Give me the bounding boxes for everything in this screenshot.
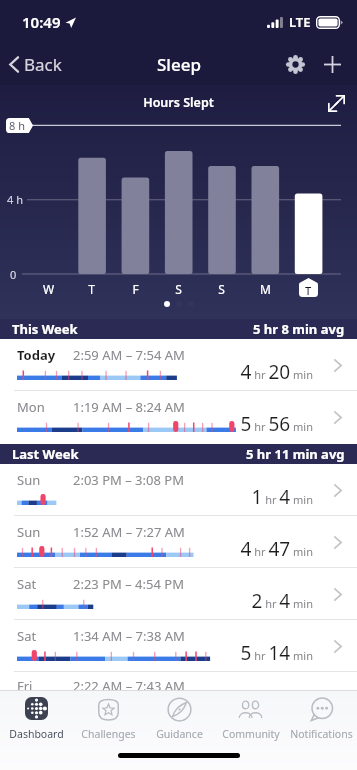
button[interactable]: Back [0,44,72,85]
button[interactable]: Dashboard [0,691,72,743]
staticText: 4 hr 20 min [240,359,313,385]
button[interactable]: Sun [0,516,357,568]
staticText: This Week [12,320,78,338]
staticText: S [208,281,235,297]
button[interactable]: Sat [0,568,357,620]
staticText: Community [222,727,280,741]
staticText: 2:03 PM – 3:08 PM [73,471,184,489]
staticText: 5 hr 11 min avg [246,445,345,463]
staticText: 0 [10,267,17,282]
staticText: 4 hr 47 min [240,536,313,562]
staticText: Sat [17,575,73,593]
button[interactable]: Mon [0,391,357,443]
staticText: 1:19 AM – 8:24 AM [73,398,185,416]
staticText: 5 hr 8 min avg [253,320,345,338]
button[interactable]: Challenges [72,691,144,743]
staticText: Challenges [81,727,136,741]
staticText: W [35,281,62,297]
button[interactable]: Sat [0,620,357,672]
staticText: Last Week [12,445,79,463]
staticText: Sleep [157,53,201,76]
staticText: 8 h [9,118,25,133]
staticText: M [252,281,279,297]
button[interactable]: Guidance [144,691,215,743]
staticText: 2:23 PM – 4:54 PM [73,575,184,593]
staticText: Dashboard [9,727,64,741]
staticText: LTE [289,13,311,31]
staticText: Sun [17,523,73,541]
staticText: Notifications [290,727,353,741]
staticText: 1 hr 4 min [251,484,313,510]
staticText: 5 hr 14 min [240,640,313,666]
button[interactable]: Today [0,339,357,391]
staticText: Hours Slept [0,94,357,111]
staticText: 2 hr 4 min [251,588,313,614]
staticText: 2:22 AM – 7:43 AM [73,677,185,695]
staticText: Guidance [156,727,203,741]
staticText: Fri [17,677,73,695]
staticText: Mon [17,398,73,416]
button[interactable]: Community [215,691,286,743]
staticText: F [122,281,149,297]
button[interactable]: Expand chart [321,88,351,118]
staticText: 10:49 [22,12,61,32]
staticText: Today [17,346,73,364]
staticText: S [165,281,192,297]
staticText: Sat [17,627,73,645]
button[interactable]: Notifications [286,691,357,743]
staticText: 2:59 AM – 7:54 AM [73,346,185,364]
staticText: Sun [17,471,73,489]
button[interactable]: Add sleep log [314,44,350,85]
staticText: T [78,281,105,297]
staticText: 5 hr 56 min [240,411,313,437]
button[interactable]: Settings [276,44,314,85]
staticText: 4 h [7,192,23,207]
staticText: Back [24,53,62,76]
button[interactable]: Sun [0,464,357,516]
staticText: T [305,283,312,298]
staticText: 1:34 AM – 7:38 AM [73,627,185,645]
staticText: 1:52 AM – 7:27 AM [73,523,185,541]
